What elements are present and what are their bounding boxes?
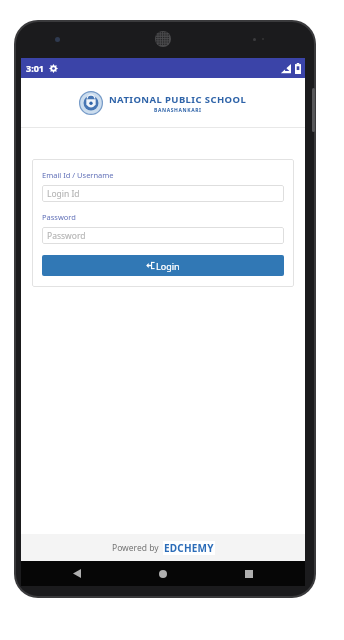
button[interactable]: Recent apps (219, 561, 279, 586)
other: Settings (49, 64, 58, 73)
staticText: Login (156, 260, 180, 272)
staticText: 3:01 (26, 62, 44, 74)
staticText: Password (42, 212, 76, 222)
button[interactable]: Home (133, 561, 193, 586)
staticText: Password (47, 230, 86, 242)
button[interactable]: Back (47, 561, 107, 586)
staticText: BANASHANKARI (154, 107, 202, 114)
staticText: NATIONAL PUBLIC SCHOOL (109, 93, 247, 106)
staticText: Login Id (47, 188, 80, 200)
button[interactable]: Password (42, 227, 284, 244)
staticText: Email Id / Username (42, 170, 114, 180)
staticText: Powered by (112, 542, 159, 554)
button[interactable]: Login Id (42, 185, 284, 202)
button[interactable]: Login (42, 255, 284, 276)
button[interactable]: EDCHEMY (164, 541, 214, 555)
staticText: EDCHEMY (164, 541, 214, 555)
